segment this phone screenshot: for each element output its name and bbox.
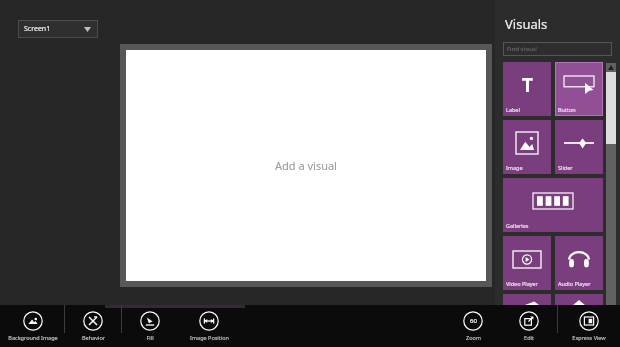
- staticText: Screen1: [24, 24, 51, 34]
- button[interactable]: Behavior: [65, 305, 121, 347]
- staticText: Behavior: [82, 334, 105, 341]
- staticText: Background Image: [8, 334, 58, 341]
- staticText: Slider: [558, 164, 573, 171]
- staticText: Zoom: [466, 334, 481, 341]
- button[interactable]: Image Position: [178, 305, 240, 347]
- button[interactable]: 60: [445, 305, 501, 347]
- staticText: Galleries: [506, 222, 529, 229]
- staticText: Find visual: [507, 45, 537, 53]
- button[interactable]: Visual: [503, 294, 551, 324]
- staticText: 60: [470, 317, 477, 325]
- button[interactable]: Label: [503, 62, 551, 116]
- button[interactable]: Visual: [555, 294, 603, 324]
- staticText: Video Player: [506, 280, 538, 287]
- button[interactable]: Find visual: [503, 42, 612, 56]
- staticText: Audio Player: [558, 280, 591, 287]
- staticText: T: [522, 72, 533, 98]
- staticText: Add a visual: [275, 158, 337, 173]
- button[interactable]: Screen1: [18, 20, 98, 38]
- staticText: Button: [558, 106, 576, 113]
- button[interactable]: Edit: [501, 305, 557, 347]
- staticText: Label: [506, 106, 520, 113]
- staticText: Image: [506, 164, 523, 171]
- button[interactable]: Fill: [122, 305, 178, 347]
- other: Scroll visuals: [606, 63, 616, 347]
- staticText: Fill: [146, 334, 154, 341]
- button[interactable]: Slider: [555, 120, 603, 174]
- staticText: Express View: [572, 334, 606, 341]
- button[interactable]: Audio Player: [555, 236, 603, 290]
- button[interactable]: Image: [503, 120, 551, 174]
- staticText: Edit: [524, 334, 534, 341]
- button[interactable]: Express View: [558, 305, 620, 347]
- button[interactable]: Video Player: [503, 236, 551, 290]
- staticText: Image Position: [190, 334, 229, 341]
- button[interactable]: Background Image: [2, 305, 64, 347]
- button[interactable]: Galleries: [503, 178, 603, 232]
- button[interactable]: Button: [555, 62, 603, 116]
- staticText: Visuals: [505, 15, 548, 33]
